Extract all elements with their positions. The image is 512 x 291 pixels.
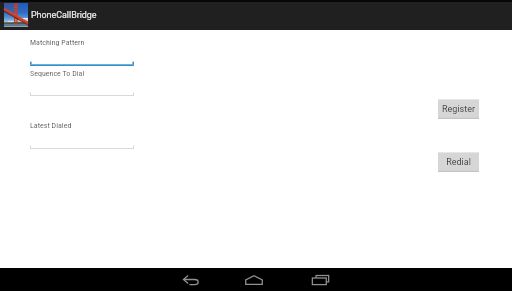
- button[interactable]: Sequence To Dial input: [30, 79, 134, 96]
- staticText: Redial: [446, 157, 471, 168]
- staticText: Matching Pattern: [30, 38, 85, 47]
- staticText: Register: [442, 104, 475, 115]
- button[interactable]: Matching Pattern input: [30, 48, 134, 66]
- button[interactable]: Register: [438, 99, 479, 119]
- button[interactable]: Latest Dialed input: [30, 131, 134, 149]
- staticText: Latest Dialed: [30, 121, 72, 130]
- button[interactable]: Home: [237, 268, 271, 291]
- button[interactable]: Back: [174, 268, 208, 291]
- staticText: PhoneCallBridge: [31, 10, 97, 20]
- staticText: Sequence To Dial: [30, 69, 85, 78]
- button[interactable]: Recent apps: [303, 268, 337, 291]
- button[interactable]: Redial: [438, 152, 479, 172]
